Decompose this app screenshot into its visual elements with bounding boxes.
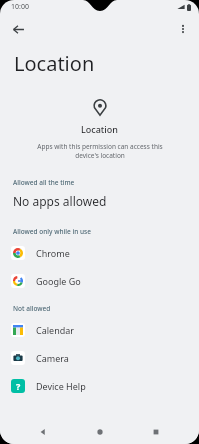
staticText: Apps with this permission can access thi… [37, 142, 163, 160]
staticText: Calendar [36, 324, 74, 336]
staticText: Device Help [36, 380, 86, 392]
staticText: Not allowed [13, 304, 51, 313]
staticText: 10:00 [11, 2, 29, 12]
staticText: Chrome [36, 247, 70, 259]
staticText: Google Go [36, 275, 81, 287]
staticText: Location [81, 123, 118, 135]
button[interactable]: Home [87, 420, 113, 444]
button[interactable]: Recent apps [143, 420, 169, 444]
button[interactable]: Chrome [0, 239, 199, 267]
staticText: No apps allowed [13, 193, 107, 209]
staticText: ? [16, 380, 21, 392]
staticText: Allowed only while in use [13, 227, 91, 236]
button[interactable]: Back [6, 17, 30, 41]
staticText: Allowed all the time [13, 178, 75, 187]
button[interactable]: Google Go [0, 267, 199, 295]
button[interactable]: Camera [0, 344, 199, 372]
staticText: Location [14, 50, 95, 77]
staticText: Camera [36, 352, 69, 364]
button[interactable]: Back [30, 420, 56, 444]
button[interactable]: Calendar [0, 316, 199, 344]
button[interactable]: ? [0, 372, 199, 400]
button[interactable]: More options [171, 17, 195, 41]
